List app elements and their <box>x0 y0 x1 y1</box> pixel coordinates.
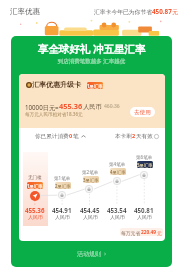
staticText: 10000日元= <box>25 103 59 111</box>
button[interactable]: 你已累计消费 <box>35 132 86 140</box>
staticText: 你已累计消费 <box>35 133 69 140</box>
staticText: 人民币 <box>110 214 125 220</box>
staticText: 第6笔单 <box>136 154 153 160</box>
staticText: 454.91 <box>52 206 72 214</box>
staticText: 去使用 <box>134 109 151 116</box>
button[interactable]: 活动规则 <box>11 248 172 260</box>
staticText: 人民币 <box>83 214 98 220</box>
staticText: 天有效 <box>136 133 153 140</box>
staticText: 1星汇率 <box>87 83 103 89</box>
staticText: 455.36 <box>25 206 45 214</box>
staticText: 455.36 <box>59 101 83 111</box>
staticText: 5星汇率 <box>137 162 153 168</box>
staticText: 到店消费笔数越多 汇率越优 <box>11 57 172 65</box>
staticText: 人民币 <box>55 214 70 220</box>
staticText: 454.45 <box>80 206 100 214</box>
staticText: 460.36 <box>104 103 120 110</box>
staticText: 人民币 <box>28 214 43 220</box>
staticText: 220.49 <box>141 229 157 236</box>
staticText: 450.87 <box>152 7 172 16</box>
staticText: 汇率优惠 <box>10 7 40 16</box>
staticText: 4星汇率 <box>110 169 126 175</box>
staticText: 本卡剩 <box>115 133 132 140</box>
staticText: 活动规则 <box>77 250 101 258</box>
staticText: 每万元省 <box>121 230 141 236</box>
staticText: 0 <box>69 132 73 140</box>
staticText: 453.54 <box>107 206 127 214</box>
staticText: 3星汇率 <box>83 177 99 183</box>
staticText: 每万元人民币相对省18.36元 <box>25 111 83 117</box>
staticText: 笔 <box>73 133 79 140</box>
staticText: 汇率优惠升级卡 <box>32 80 81 89</box>
staticText: 第1笔单 <box>54 175 71 181</box>
staticText: 450.81 <box>134 206 154 214</box>
other: 有效期说明 <box>154 134 159 139</box>
staticText: 2 <box>132 132 136 140</box>
staticText: 第2笔单 <box>82 169 99 175</box>
staticText: 人民币 <box>83 103 102 111</box>
staticText: 人民币 <box>137 214 152 220</box>
staticText: 元 <box>157 230 162 236</box>
staticText: 汇率卡今年已为你节省 <box>94 8 152 15</box>
staticText: 2星汇率 <box>55 183 71 189</box>
staticText: 元 <box>172 8 178 15</box>
staticText: 无门槛 <box>28 175 42 181</box>
staticText: 第4笔单 <box>109 161 126 167</box>
button[interactable]: 去使用 <box>130 107 155 117</box>
staticText: 享全球好礼 冲五星汇率 <box>11 42 172 56</box>
staticText: 1星汇率 <box>27 183 43 189</box>
